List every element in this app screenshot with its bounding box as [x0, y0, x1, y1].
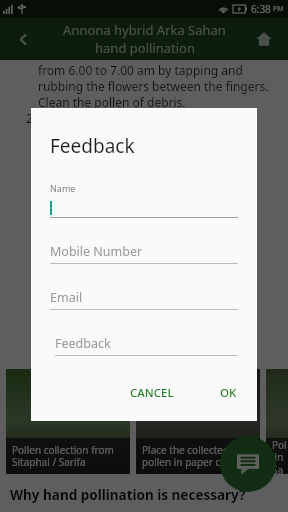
button[interactable]: Pollen collection from Sitaphal / Sarifa [6, 369, 130, 474]
button[interactable]: OK [208, 377, 249, 409]
staticText: Why hand pollination is necessary? [10, 486, 246, 504]
staticText: CANCEL [130, 385, 174, 401]
button[interactable]: Name [50, 182, 238, 218]
staticText: Feedback [55, 335, 111, 352]
staticText: PM [273, 4, 284, 14]
button[interactable]: Pollin Sahan [266, 369, 288, 474]
button[interactable]: Back [6, 22, 40, 56]
button[interactable]: Feedback [220, 436, 276, 492]
button[interactable]: Feedback [55, 335, 238, 356]
staticText: Mobile Number [50, 243, 143, 260]
staticText: Annona hybrid Arka Sahan [63, 21, 226, 39]
button[interactable]: Mobile Number [50, 243, 238, 264]
staticText: Clean the pollen of debris. [38, 94, 186, 110]
staticText: Place the collected pollen in paper cup [142, 443, 233, 469]
staticText: 6:38 [251, 2, 271, 16]
button[interactable]: Email [50, 289, 238, 310]
staticText: 2 [26, 110, 33, 126]
staticText: Name [50, 182, 76, 194]
staticText: rubbing the flowers between the fingers. [38, 78, 269, 94]
button[interactable]: Home [248, 23, 280, 55]
button[interactable]: Place the collected pollen in paper cup [136, 369, 260, 474]
staticText: Feedback [50, 133, 135, 159]
staticText: OK [220, 385, 237, 401]
staticText: Pollen collection from Sitaphal / Sarifa [12, 443, 114, 469]
staticText: hand pollination [95, 39, 195, 57]
button[interactable]: CANCEL [118, 377, 186, 409]
staticText: Email [50, 289, 83, 306]
staticText: Pollin Sahan [272, 438, 288, 474]
staticText: from 6.00 to 7.00 am by tapping and [38, 62, 243, 78]
